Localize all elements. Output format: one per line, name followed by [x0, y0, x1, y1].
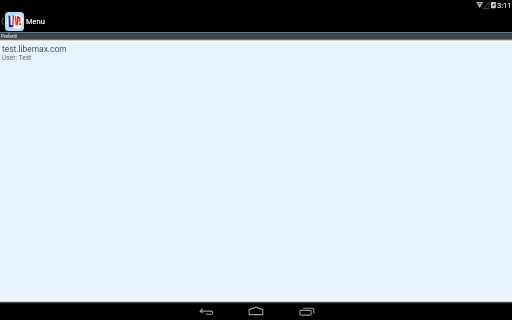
button[interactable]: Preferiti: [0, 34, 512, 39]
other: Navigate up: [1, 18, 4, 25]
button[interactable]: Home: [239, 304, 273, 320]
button[interactable]: Navigate up: [0, 10, 48, 32]
staticText: User: Test: [2, 54, 32, 62]
staticText: test.libemax.com: [2, 44, 67, 54]
staticText: Menu: [26, 17, 45, 26]
staticText: Preferiti: [1, 34, 18, 39]
button[interactable]: test.libemax.com: [0, 42, 512, 62]
button[interactable]: Recent apps: [289, 304, 323, 320]
staticText: 3:11: [497, 1, 512, 10]
button[interactable]: Back: [189, 304, 223, 320]
